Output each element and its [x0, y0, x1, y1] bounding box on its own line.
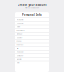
staticText: Address — [17, 44, 24, 46]
staticText: Role — [17, 62, 20, 64]
staticText: Birthday — [17, 33, 23, 35]
staticText: Last name — [17, 22, 24, 24]
staticText: Create your account — [17, 3, 46, 7]
staticText: Phone — [17, 40, 22, 42]
staticText: Company — [17, 55, 24, 56]
staticText: Personal Info — [22, 13, 42, 17]
staticText: Postcode — [17, 51, 24, 53]
staticText: First name — [17, 19, 24, 20]
staticText: Password — [17, 29, 25, 31]
staticText: Country — [17, 37, 23, 38]
staticText: Fill in your details below — [25, 7, 39, 8]
staticText: City — [17, 47, 19, 49]
staticText: Website — [17, 58, 22, 60]
staticText: Email — [17, 26, 20, 28]
